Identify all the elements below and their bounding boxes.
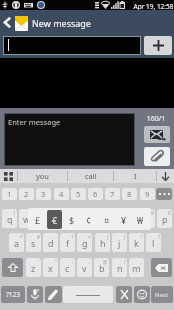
button[interactable]: a (9, 233, 24, 252)
button[interactable]: c (60, 258, 75, 277)
button[interactable]: Voice input (27, 286, 43, 303)
button[interactable]: Emoji (134, 286, 150, 303)
button[interactable]: j (112, 233, 127, 252)
button[interactable]: I (114, 169, 156, 183)
button[interactable]: call (68, 169, 113, 183)
button[interactable]: ¥ (116, 210, 131, 229)
staticText: n (117, 262, 123, 274)
button[interactable]: 9 (140, 188, 155, 200)
button[interactable]: Send message (144, 126, 170, 143)
button[interactable]: Add recipients (144, 36, 172, 55)
button[interactable]: 6 (88, 188, 103, 200)
button[interactable]: t (71, 209, 86, 228)
button[interactable]: q (2, 209, 17, 228)
staticText: , (141, 259, 143, 265)
staticText: 9 (145, 189, 150, 199)
staticText: € (52, 214, 58, 226)
button[interactable]: l (146, 233, 161, 252)
button[interactable]: m (129, 258, 144, 277)
staticText: b (99, 262, 105, 274)
button[interactable]: Handwriting (45, 286, 62, 303)
button[interactable]: $ (64, 210, 79, 229)
button[interactable]: z (26, 258, 41, 277)
staticText: ! (141, 234, 143, 240)
staticText: w (23, 213, 31, 225)
button[interactable]: f (60, 233, 75, 252)
button[interactable]: Hide keyboard (157, 169, 174, 183)
button[interactable]: ₩ (133, 210, 148, 229)
staticText: Next (155, 291, 169, 299)
button[interactable]: 5 (71, 188, 86, 200)
staticText: ₩ (137, 214, 144, 226)
button[interactable]: g (77, 233, 92, 252)
button[interactable]: v (77, 258, 92, 277)
button[interactable]: e (36, 209, 51, 228)
button[interactable]: r (54, 209, 69, 228)
button[interactable]: Keyboard settings (116, 286, 132, 303)
staticText: ¥ (121, 214, 127, 226)
button[interactable]: 3 (36, 188, 51, 200)
button[interactable]: k (129, 233, 144, 252)
staticText: f (66, 237, 70, 249)
button[interactable]: 2 (19, 188, 34, 200)
staticText: ¤ (104, 214, 110, 226)
staticText: j (118, 237, 121, 249)
button[interactable]: 8 (122, 188, 137, 200)
button[interactable]: Delete (151, 258, 172, 277)
button[interactable]: More symbols (156, 188, 172, 200)
button[interactable]: ¢ (81, 210, 96, 229)
button[interactable]: s (26, 233, 41, 252)
staticText: 0 (168, 210, 171, 216)
button[interactable]: u (105, 209, 120, 228)
button[interactable]: Attach file (144, 147, 170, 166)
button[interactable]: Navigate up (0, 10, 30, 35)
staticText: x (48, 262, 53, 274)
staticText: l (152, 237, 155, 249)
staticText: 1 (7, 189, 12, 199)
button[interactable] (3, 36, 141, 55)
staticText: @ (103, 259, 108, 265)
button[interactable]: x (43, 258, 58, 277)
staticText: c (65, 262, 70, 274)
staticText: d (48, 237, 54, 249)
button[interactable]: Enter message (4, 113, 135, 166)
button[interactable]: € (47, 210, 62, 229)
button[interactable]: o (140, 209, 155, 228)
button[interactable]: d (43, 233, 58, 252)
button[interactable]: Space (63, 286, 113, 303)
staticText: q (7, 213, 13, 225)
button[interactable]: you (17, 169, 67, 183)
button[interactable]: b (94, 258, 109, 277)
button[interactable]: 7 (105, 188, 120, 200)
button[interactable]: 1 (2, 188, 17, 200)
button[interactable]: £ (30, 210, 45, 229)
button[interactable]: 4 (54, 188, 69, 200)
staticText: r (60, 213, 64, 225)
button[interactable]: p (157, 209, 172, 228)
button[interactable]: ¤ (99, 210, 114, 229)
button[interactable]: i (122, 209, 137, 228)
staticText: ?123 (6, 290, 20, 299)
button[interactable]: Shift (2, 258, 23, 277)
button[interactable]: y (88, 209, 103, 228)
staticText: $ (69, 214, 75, 226)
staticText: ' (38, 259, 40, 265)
button[interactable]: More suggestions (1, 169, 16, 183)
staticText: h (100, 237, 106, 249)
staticText: g (82, 237, 88, 249)
button[interactable]: Next (151, 286, 173, 303)
button[interactable]: w (19, 209, 34, 228)
button[interactable]: n (112, 258, 127, 277)
staticText: = (88, 234, 91, 240)
staticText: ¢ (86, 214, 92, 226)
button[interactable]: h (95, 233, 110, 252)
staticText: a (14, 237, 20, 249)
button[interactable]: 0 (157, 188, 172, 200)
staticText: call (85, 171, 97, 181)
button[interactable]: ?123 (1, 286, 25, 303)
